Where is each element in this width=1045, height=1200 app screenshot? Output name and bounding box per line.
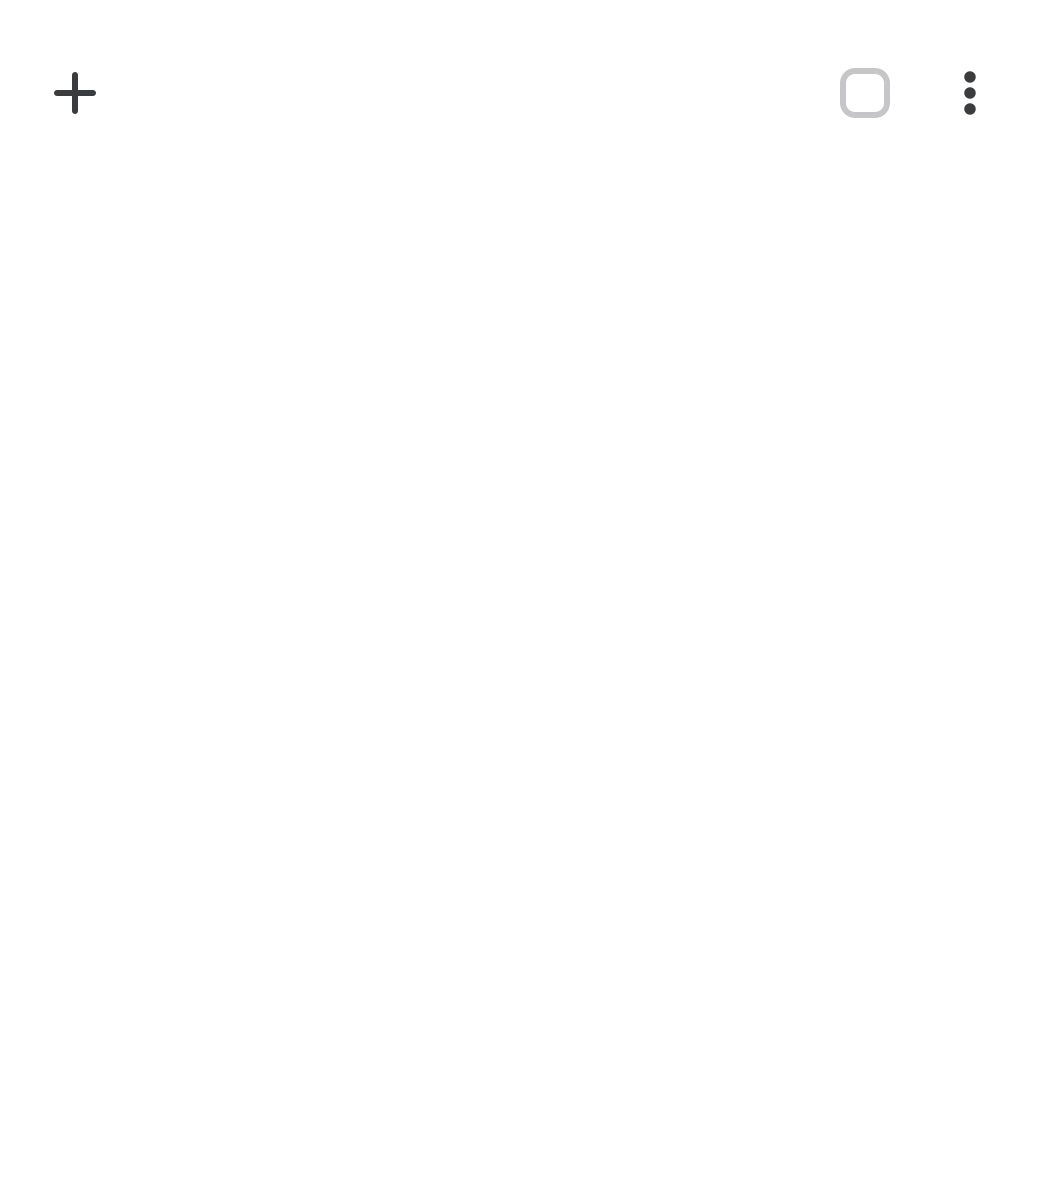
button[interactable]: More options bbox=[928, 51, 1012, 135]
button[interactable]: New bbox=[33, 51, 117, 135]
button[interactable]: Stop bbox=[823, 51, 907, 135]
